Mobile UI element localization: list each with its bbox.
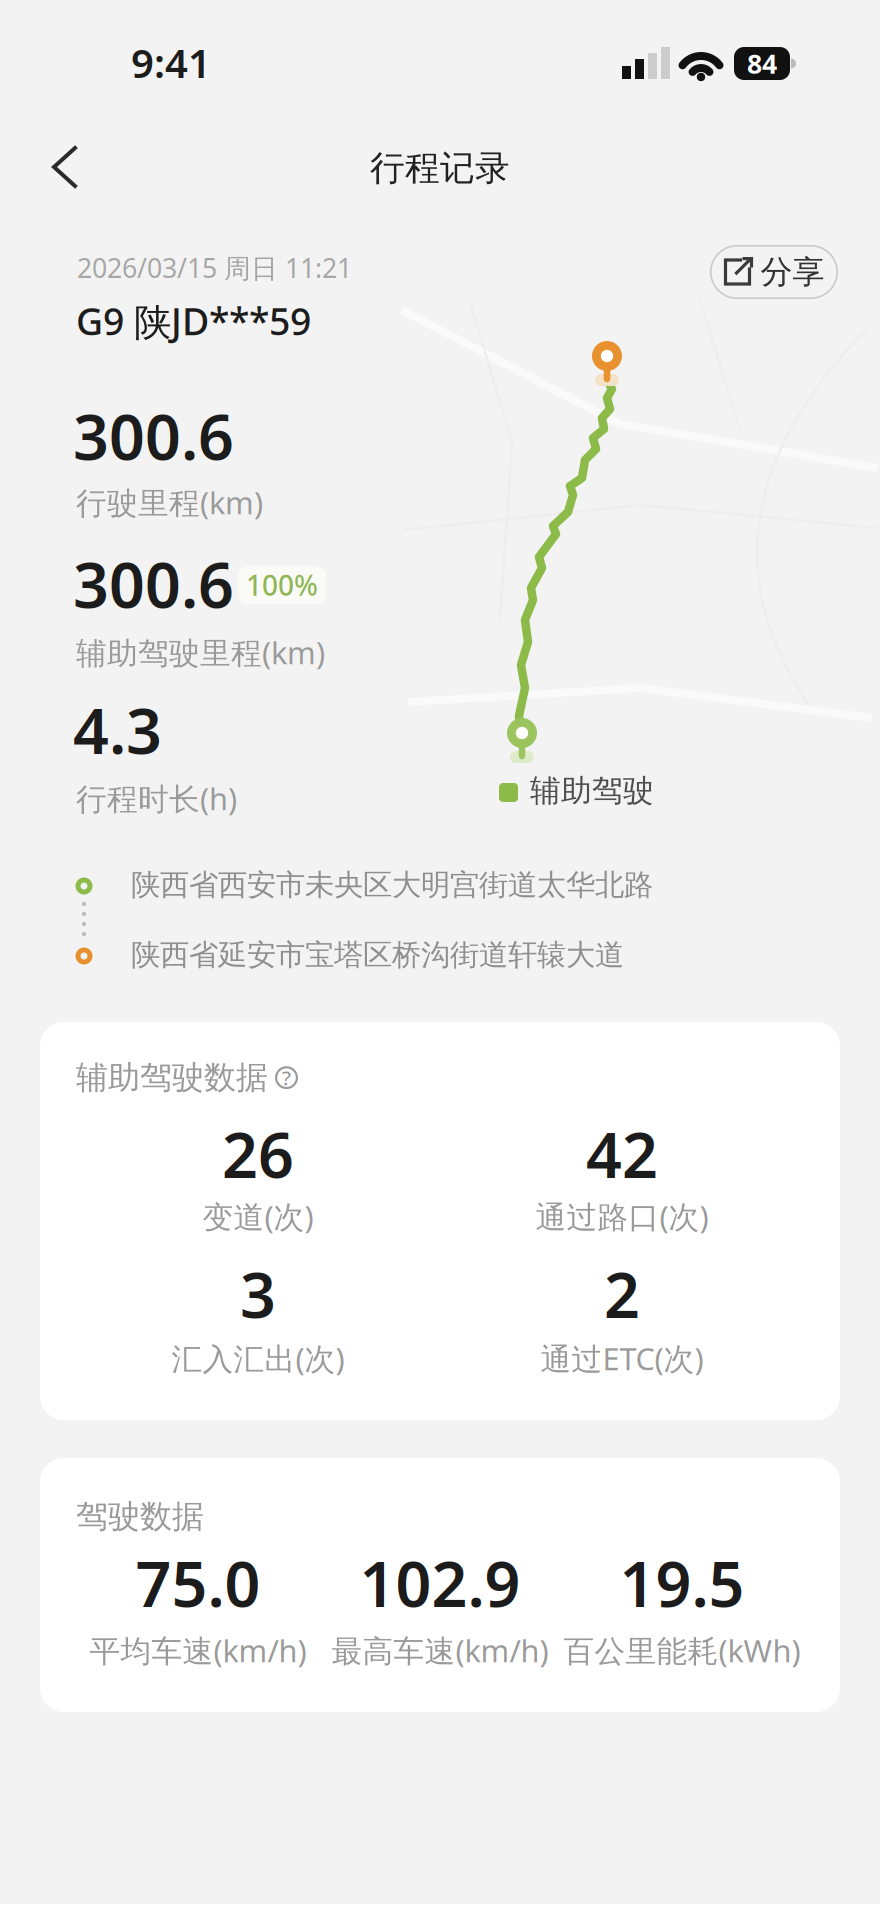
staticText: 行程时长(h) <box>76 778 237 819</box>
staticText: 分享 <box>760 252 824 292</box>
staticText: 42 <box>586 1112 658 1195</box>
staticText: ? <box>282 1064 291 1091</box>
staticText: 百公里能耗(kWh) <box>563 1630 800 1671</box>
staticText: 100% <box>246 566 318 604</box>
staticText: 平均车速(km/h) <box>89 1630 306 1671</box>
staticText: 陕西省延安市宝塔区桥沟街道轩辕大道 <box>131 937 624 973</box>
staticText: 行程记录 <box>370 147 510 190</box>
staticText: 最高车速(km/h) <box>331 1630 548 1671</box>
button[interactable]: 分享 <box>710 245 838 299</box>
staticText: 辅助驾驶里程(km) <box>76 632 325 673</box>
staticText: 驾驶数据 <box>76 1497 204 1536</box>
staticText: 300.6 <box>73 542 234 625</box>
staticText: 通过ETC(次) <box>540 1338 703 1379</box>
staticText: 2026/03/15 周日 11:21 <box>77 250 352 285</box>
staticText: 26 <box>222 1112 294 1195</box>
staticText: 2 <box>604 1252 640 1335</box>
staticText: 300.6 <box>73 394 234 477</box>
staticText: 汇入汇出(次) <box>171 1338 344 1379</box>
staticText: 9:41 <box>131 36 211 89</box>
staticText: 19.5 <box>619 1541 744 1624</box>
staticText: 84 <box>747 46 777 81</box>
staticText: 变道(次) <box>202 1196 313 1237</box>
staticText: G9 陕JD***59 <box>76 296 311 346</box>
staticText: 75.0 <box>135 1541 260 1624</box>
staticText: 通过路口(次) <box>535 1196 708 1237</box>
staticText: 辅助驾驶数据 <box>76 1058 268 1097</box>
staticText: 行驶里程(km) <box>76 482 263 523</box>
staticText: 102.9 <box>359 1541 520 1624</box>
staticText: 4.3 <box>73 688 162 771</box>
staticText: 陕西省西安市未央区大明宫街道太华北路 <box>131 867 653 903</box>
staticText: 3 <box>240 1252 276 1335</box>
button[interactable]: Help <box>275 1066 298 1089</box>
staticText: 辅助驾驶 <box>530 772 654 810</box>
